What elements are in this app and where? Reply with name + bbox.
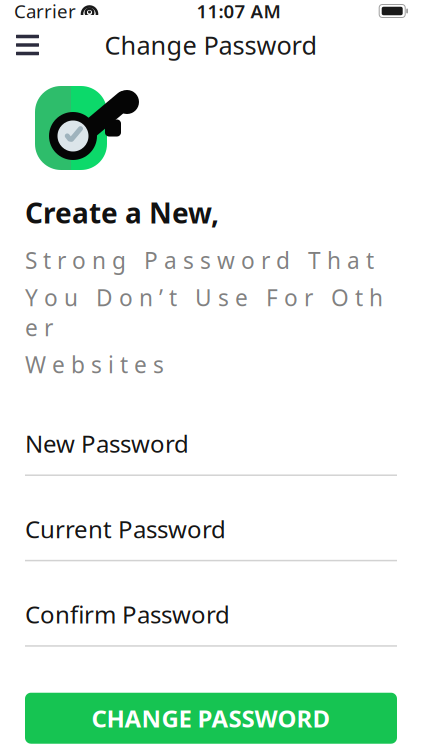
button[interactable]: CHANGE PASSWORD xyxy=(25,693,397,744)
staticText: Current Password xyxy=(25,513,226,545)
staticText: W e b s i t e s xyxy=(25,349,164,380)
staticText: Carrier xyxy=(14,0,76,23)
staticText: Y o u D o n ’ t U s e F o r O t h e r xyxy=(25,282,383,342)
staticText: Create a New, xyxy=(25,194,219,231)
staticText: New Password xyxy=(25,428,189,459)
staticText: S t r o n g P a s s w o r d T h a t xyxy=(25,245,374,275)
staticText: 11:07 AM xyxy=(197,0,281,23)
staticText: Confirm Password xyxy=(25,598,230,630)
staticText: CHANGE PASSWORD xyxy=(91,702,330,734)
button[interactable]: Menu xyxy=(4,25,51,65)
staticText: Change Password xyxy=(104,28,317,62)
